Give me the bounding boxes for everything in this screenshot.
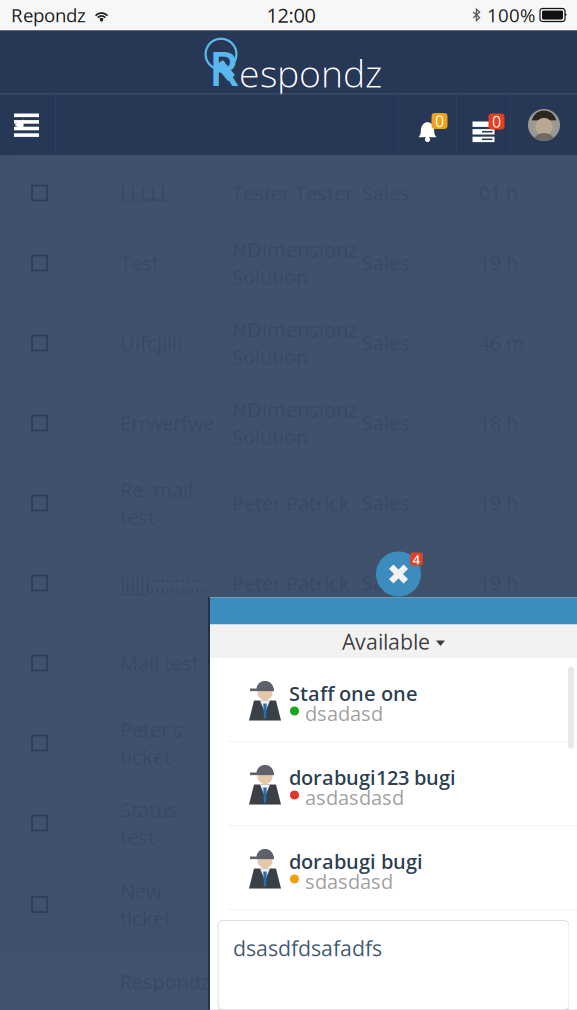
staticText: Tester Tester [232,179,353,207]
staticText: dsasdfdsafadfs [233,933,382,963]
staticText: 12:00 [266,1,315,29]
staticText: Sales [362,490,409,516]
staticText: dsadasd [305,699,383,727]
staticText: New ticket [120,877,171,932]
staticText: Respondz © 2018. All rights reserved [119,968,457,995]
staticText: 0 [435,110,444,132]
staticText: Uifcjiiii [120,329,182,357]
staticText: Test [120,249,159,277]
staticText: Jjjjjj;;;;;;;;;;; [120,569,205,597]
staticText: 19 h [479,650,518,676]
staticText: Sales [362,250,409,276]
button[interactable]: Close chat [376,544,426,603]
staticText: Sales [362,410,409,436]
button[interactable]: dorabugi bugi [210,826,577,910]
staticText: espondz [239,47,382,98]
staticText: Peter Patrick [232,569,350,597]
staticText: Sales [362,650,409,676]
staticText: 19 h [479,570,518,596]
button[interactable]: Account [511,94,577,155]
staticText: Mail test [120,649,199,677]
staticText: Errwerfwe [120,409,214,437]
button[interactable]: Notifications [399,94,456,155]
staticText: Sales [362,180,409,206]
staticText: 46 m [479,330,524,356]
staticText: dorabugi123 bugi [289,763,456,791]
staticText: R [209,36,239,100]
button[interactable]: dorabugi123 bugi [210,742,577,826]
staticText: sdasdasd [305,867,393,895]
staticText: 100% [487,2,535,28]
staticText: 19 h [479,490,518,516]
staticText: 19 h [479,250,518,276]
staticText: Available [342,627,430,656]
staticText: Sales [362,570,409,596]
staticText: Peter Patrick [232,489,350,517]
button[interactable]: Staff one one [210,658,577,742]
staticText: Peter Patrick [232,649,350,677]
staticText: Repondz [11,2,86,28]
staticText: 01 h [479,180,518,206]
staticText: Sales [362,330,409,356]
button[interactable]: Toggle sidebar [0,94,55,155]
staticText: dorabugi bugi [289,847,423,875]
staticText: Staff one one [289,679,418,707]
staticText: 0 [492,111,501,132]
button[interactable]: Tasks [457,94,510,155]
staticText: 4 [412,550,420,568]
staticText: asdasdasd [305,783,404,811]
staticText: 18 h [479,410,518,436]
staticText: Peter's ticket [120,716,183,770]
